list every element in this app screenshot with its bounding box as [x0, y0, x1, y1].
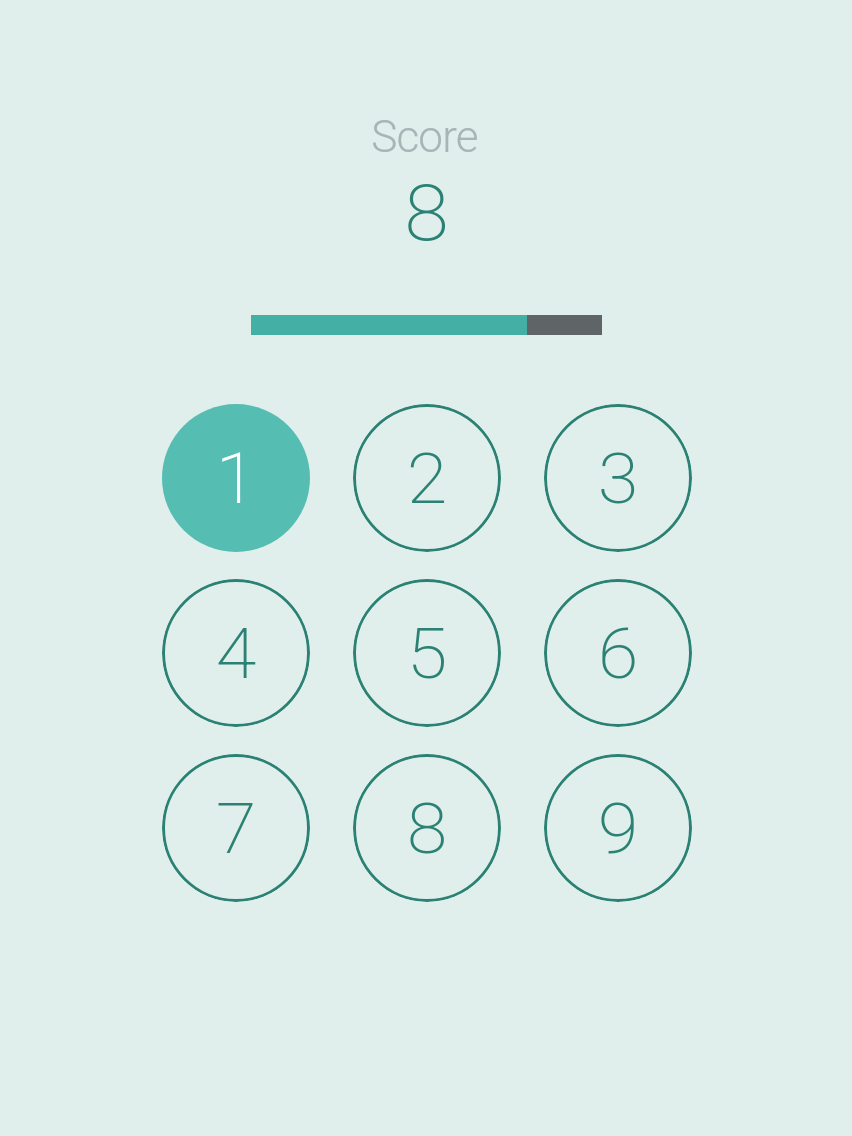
staticText: 5 — [406, 612, 448, 695]
button[interactable]: 6 — [544, 579, 692, 727]
button[interactable]: 1 — [162, 404, 310, 552]
staticText: 7 — [215, 787, 257, 870]
button[interactable]: 3 — [544, 404, 692, 552]
button[interactable]: 7 — [162, 754, 310, 902]
staticText: 2 — [406, 437, 448, 520]
staticText: 1 — [215, 437, 257, 520]
button[interactable]: 4 — [162, 579, 310, 727]
staticText: Score — [371, 111, 478, 163]
other: Time remaining — [251, 315, 602, 335]
staticText: 8 — [404, 168, 449, 259]
staticText: 9 — [597, 787, 639, 870]
staticText: 8 — [406, 787, 448, 870]
staticText: 3 — [597, 437, 639, 520]
button[interactable]: 5 — [353, 579, 501, 727]
button[interactable]: 9 — [544, 754, 692, 902]
button[interactable]: 8 — [353, 754, 501, 902]
staticText: 4 — [215, 612, 257, 695]
button[interactable]: 2 — [353, 404, 501, 552]
staticText: 6 — [597, 612, 639, 695]
